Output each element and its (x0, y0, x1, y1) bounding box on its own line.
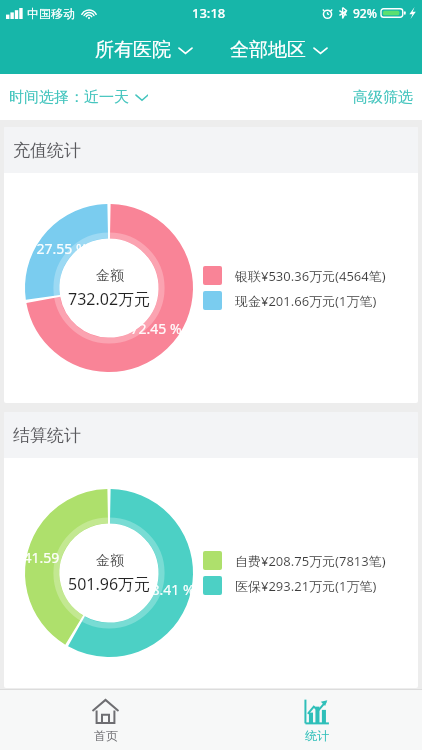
staticText: 13:18 (192, 4, 226, 22)
staticText: 现金¥201.66万元(1万笔) (235, 292, 377, 310)
staticText: 所有医院 (95, 38, 171, 62)
button[interactable]: 高级筛选 (353, 84, 413, 111)
staticText: 首页 (94, 728, 118, 743)
staticText: 58.41 % (143, 580, 195, 599)
staticText: 92% (353, 5, 377, 21)
staticText: 结算统计 (13, 425, 81, 446)
staticText: 充值统计 (13, 140, 81, 161)
staticText: 27.55 % (36, 239, 88, 258)
staticText: 72.45 % (130, 319, 182, 338)
staticText: 银联¥530.36万元(4564笔) (235, 267, 386, 285)
button[interactable]: 所有医院 (91, 33, 196, 67)
staticText: 医保¥293.21万元(1万笔) (235, 577, 377, 595)
staticText: 时间选择：近一天 (9, 88, 129, 107)
staticText: 金额 (96, 267, 124, 285)
staticText: 41.59 % (23, 548, 75, 567)
staticText: 501.96万元 (68, 573, 151, 595)
staticText: 金额 (96, 552, 124, 570)
staticText: 统计 (305, 728, 329, 743)
button[interactable]: 时间选择：近一天 (9, 84, 148, 111)
staticText: 全部地区 (230, 38, 306, 62)
button[interactable]: 首页 (0, 690, 211, 750)
staticText: 自费¥208.75万元(7813笔) (235, 552, 386, 570)
staticText: 高级筛选 (353, 88, 413, 107)
button[interactable]: 全部地区 (226, 33, 331, 67)
button[interactable]: 统计 (211, 690, 422, 750)
staticText: 732.02万元 (68, 288, 151, 310)
staticText: 中国移动 (27, 6, 75, 21)
